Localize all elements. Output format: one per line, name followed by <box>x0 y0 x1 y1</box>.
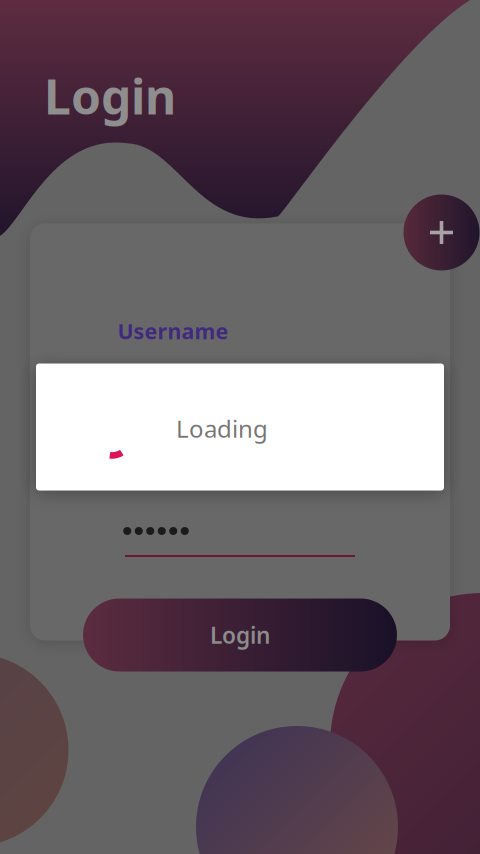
button[interactable]: Login <box>83 598 397 671</box>
staticText: Username <box>117 317 228 345</box>
staticText: Loading <box>176 413 268 444</box>
staticText: Login <box>210 620 270 650</box>
button[interactable]: Add <box>403 194 479 270</box>
staticText: Login <box>44 64 176 128</box>
